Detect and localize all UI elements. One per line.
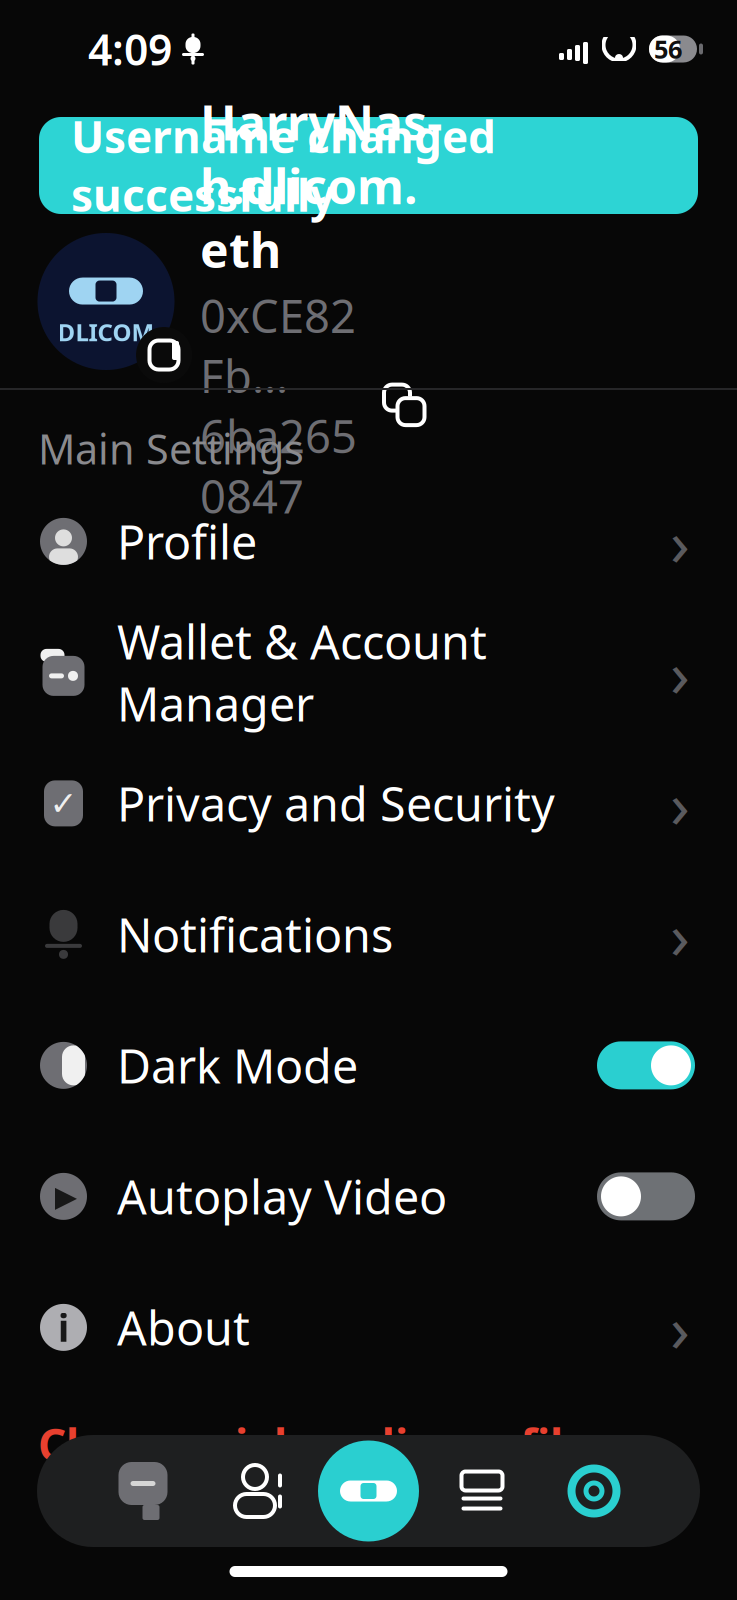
staticText: Main Settings	[38, 421, 304, 476]
staticText: DLICOM	[57, 316, 154, 348]
button[interactable]: Settings	[538, 1435, 650, 1547]
staticText: ›	[670, 630, 690, 715]
button[interactable]: ▶	[0, 1131, 737, 1262]
button[interactable]: Clear social media profile	[0, 1415, 589, 1473]
staticText: About	[117, 1296, 250, 1358]
button[interactable]: Friends	[199, 1435, 311, 1547]
button[interactable]: Wallet & Account Manager	[0, 607, 737, 738]
button[interactable]: Copy wallet address	[383, 384, 427, 428]
staticText: HarryNash.dlicom.eth	[200, 90, 442, 281]
button[interactable]: Home	[311, 1435, 426, 1547]
staticText: Profile	[117, 510, 257, 572]
staticText: Privacy and Security	[117, 772, 555, 834]
button[interactable]: ✓	[0, 738, 737, 869]
button[interactable]: Notifications	[0, 869, 737, 1000]
staticText: Notifications	[117, 903, 393, 965]
staticText: Wallet & Account Manager	[117, 610, 487, 734]
staticText: ›	[670, 761, 690, 846]
staticText: Clear social media profile	[38, 1415, 589, 1473]
staticText: i	[58, 1303, 69, 1352]
button[interactable]: Feed	[426, 1435, 538, 1547]
button[interactable]: Profile	[0, 476, 737, 607]
button[interactable]: Messages	[87, 1435, 199, 1547]
button[interactable]: Dark Mode	[0, 1000, 737, 1131]
staticText: Dark Mode	[117, 1034, 358, 1096]
button[interactable]: Username changed successfully	[39, 117, 698, 214]
staticText: 56	[654, 32, 682, 66]
staticText: ▶	[54, 1180, 77, 1213]
staticText: ›	[670, 892, 690, 977]
staticText: ›	[670, 499, 690, 584]
staticText: Autoplay Video	[117, 1165, 447, 1227]
staticText: 4:09	[88, 21, 172, 77]
button[interactable]: i	[0, 1262, 737, 1393]
staticText: ✓	[49, 784, 77, 822]
staticText: ›	[670, 1285, 690, 1370]
staticText: Username changed successfully	[71, 107, 496, 224]
staticText: 0xCE82Fb...6ba2650847	[200, 285, 357, 526]
